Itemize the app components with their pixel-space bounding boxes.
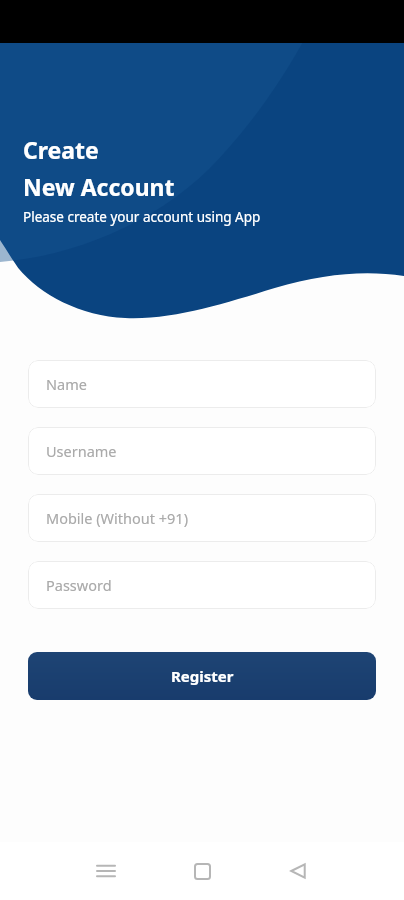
button[interactable]: Name bbox=[28, 360, 376, 408]
staticText: Name bbox=[46, 374, 87, 394]
staticText: Mobile (Without +91) bbox=[46, 508, 189, 528]
staticText: Create bbox=[23, 134, 99, 165]
staticText: Please create your account using App bbox=[23, 208, 261, 226]
staticText: Password bbox=[46, 575, 112, 595]
button[interactable]: Password bbox=[28, 561, 376, 609]
staticText: Username bbox=[46, 441, 117, 461]
staticText: New Account bbox=[23, 171, 175, 202]
button[interactable]: Mobile (Without +91) bbox=[28, 494, 376, 542]
staticText: Register bbox=[171, 666, 234, 686]
button[interactable]: Username bbox=[28, 427, 376, 475]
button[interactable]: Register bbox=[28, 652, 376, 700]
button[interactable]: Home bbox=[154, 842, 250, 900]
button[interactable]: Recent apps bbox=[58, 842, 154, 900]
button[interactable]: Back bbox=[250, 842, 346, 900]
